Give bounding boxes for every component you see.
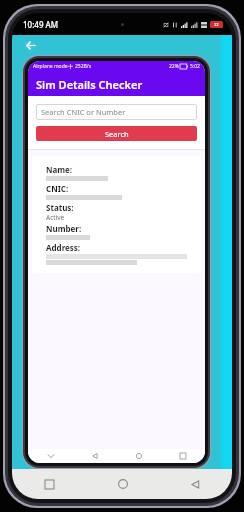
staticText: Active — [46, 213, 65, 222]
button[interactable]: Recents — [12, 469, 86, 499]
staticText: 22 — [214, 22, 219, 27]
staticText: Airplane mode — [33, 63, 68, 70]
button[interactable]: Recents — [161, 449, 205, 463]
button[interactable]: Hide keyboard — [28, 449, 73, 463]
staticText: Sim Details Checker — [36, 77, 143, 92]
button[interactable]: Back — [159, 469, 232, 499]
staticText: Number: — [46, 223, 82, 234]
staticText: Status: — [46, 202, 74, 213]
staticText: Search — [105, 129, 129, 139]
staticText: 22% — [169, 63, 179, 70]
button[interactable]: Home — [117, 449, 161, 463]
staticText: 252B/s — [75, 63, 92, 70]
staticText: Name: — [46, 164, 73, 175]
button[interactable]: Back — [20, 35, 40, 55]
staticText: Search CNIC or Number — [41, 107, 126, 117]
button[interactable]: Search — [36, 126, 197, 141]
staticText: 5:02 — [190, 63, 200, 70]
button[interactable]: Home — [86, 469, 159, 499]
staticText: Address: — [46, 242, 81, 253]
staticText: CNIC: — [46, 183, 69, 194]
button[interactable]: Back — [73, 449, 117, 463]
button[interactable]: Search CNIC or Number — [36, 104, 197, 120]
staticText: 10:49 AM — [23, 19, 59, 30]
